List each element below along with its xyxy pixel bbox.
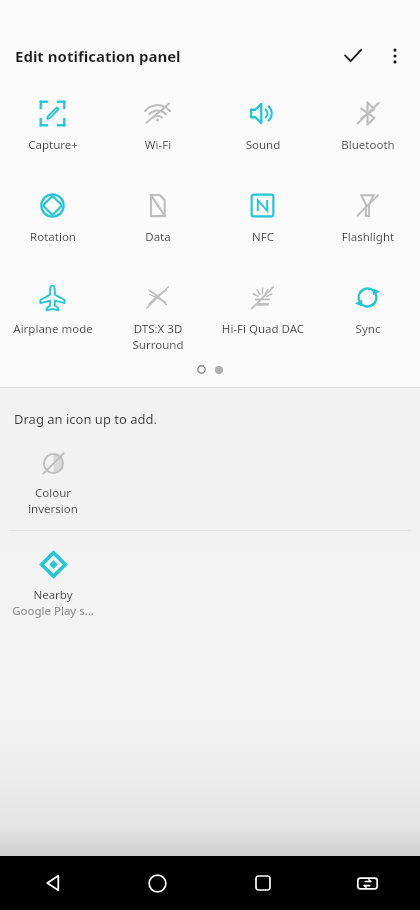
button[interactable]: Flashlight (315, 190, 420, 245)
button[interactable]: Capture+ (0, 98, 105, 153)
staticText: Sync (318, 321, 418, 337)
button[interactable]: Nearby (0, 549, 106, 619)
staticText: Data (108, 229, 208, 245)
staticText: Sound (213, 137, 313, 153)
staticText: Rotation (3, 229, 103, 245)
staticText: Airplane mode (3, 321, 103, 337)
staticText: DTS:X 3D Surround (108, 321, 208, 352)
button[interactable]: Sync (315, 282, 420, 337)
button[interactable]: Bluetooth (315, 98, 420, 153)
button[interactable]: Airplane mode (0, 282, 105, 337)
staticText: Drag an icon up to add. (14, 410, 157, 428)
button[interactable]: Wi-Fi (105, 98, 210, 153)
button[interactable]: Done (331, 36, 375, 76)
staticText: Hi-Fi Quad DAC (213, 321, 313, 337)
button[interactable]: DTS:X 3D Surround (105, 282, 210, 352)
staticText: Capture+ (3, 137, 103, 153)
staticText: Flashlight (318, 229, 418, 245)
staticText: Nearby (5, 587, 101, 603)
button[interactable]: Rotation (0, 190, 105, 245)
staticText: Bluetooth (318, 137, 418, 153)
button[interactable]: Data (105, 190, 210, 245)
button[interactable]: Hi-Fi Quad DAC (210, 282, 315, 337)
staticText: NFC (213, 229, 313, 245)
button[interactable]: Back (0, 856, 105, 910)
staticText: Wi-Fi (108, 137, 208, 153)
staticText: Edit notification panel (15, 46, 181, 66)
button[interactable]: Colour inversion (0, 449, 106, 516)
staticText: Colour inversion (5, 485, 101, 516)
button[interactable]: NFC (210, 190, 315, 245)
button[interactable]: Recent apps (210, 856, 315, 910)
button[interactable]: Sound (210, 98, 315, 153)
button[interactable]: Split screen (315, 856, 420, 910)
button[interactable]: More options (375, 36, 415, 76)
button[interactable]: Home (105, 856, 210, 910)
staticText: Google Play s… (3, 603, 103, 619)
